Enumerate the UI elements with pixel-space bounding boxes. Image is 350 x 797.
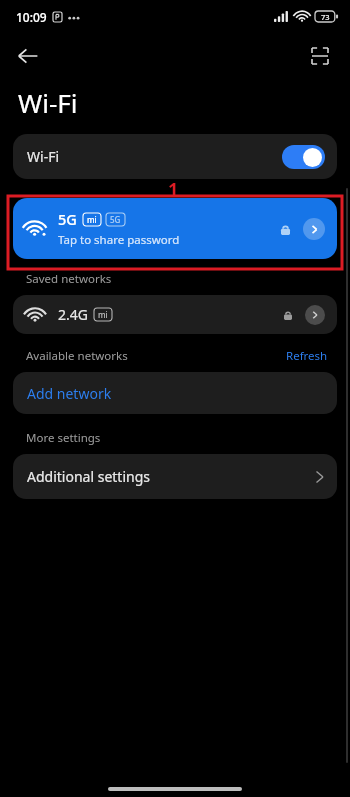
staticText: Refresh (286, 348, 328, 364)
staticText: 2.4G (58, 305, 88, 324)
button[interactable]: Saved network details (305, 305, 325, 325)
staticText: mi (98, 309, 108, 320)
staticText: Saved networks (26, 271, 112, 287)
staticText: More settings (26, 430, 101, 446)
button[interactable]: Network details (303, 218, 325, 240)
button[interactable]: Back (8, 36, 48, 76)
staticText: 5G (110, 214, 121, 225)
button[interactable]: 5G (13, 198, 337, 259)
staticText: 73 (321, 12, 330, 22)
staticText: Available networks (26, 348, 128, 364)
staticText: Wi-Fi (27, 147, 60, 166)
button[interactable]: Additional settings (13, 454, 337, 499)
button[interactable]: 2.4G (13, 295, 337, 334)
staticText: mi (87, 214, 97, 225)
button[interactable] (282, 145, 325, 169)
staticText: 5G (58, 209, 77, 229)
staticText: 1 (168, 177, 179, 202)
staticText: Additional settings (27, 467, 150, 486)
staticText: Wi-Fi (18, 85, 78, 120)
staticText: Tap to share password (58, 232, 180, 248)
button[interactable]: Add network (13, 372, 337, 414)
button[interactable]: Scan QR code (300, 36, 340, 76)
staticText: 10:09 (16, 9, 47, 25)
staticText: Add network (27, 384, 112, 403)
button[interactable]: Wi-Fi (13, 134, 337, 179)
button[interactable]: Refresh (286, 348, 328, 364)
